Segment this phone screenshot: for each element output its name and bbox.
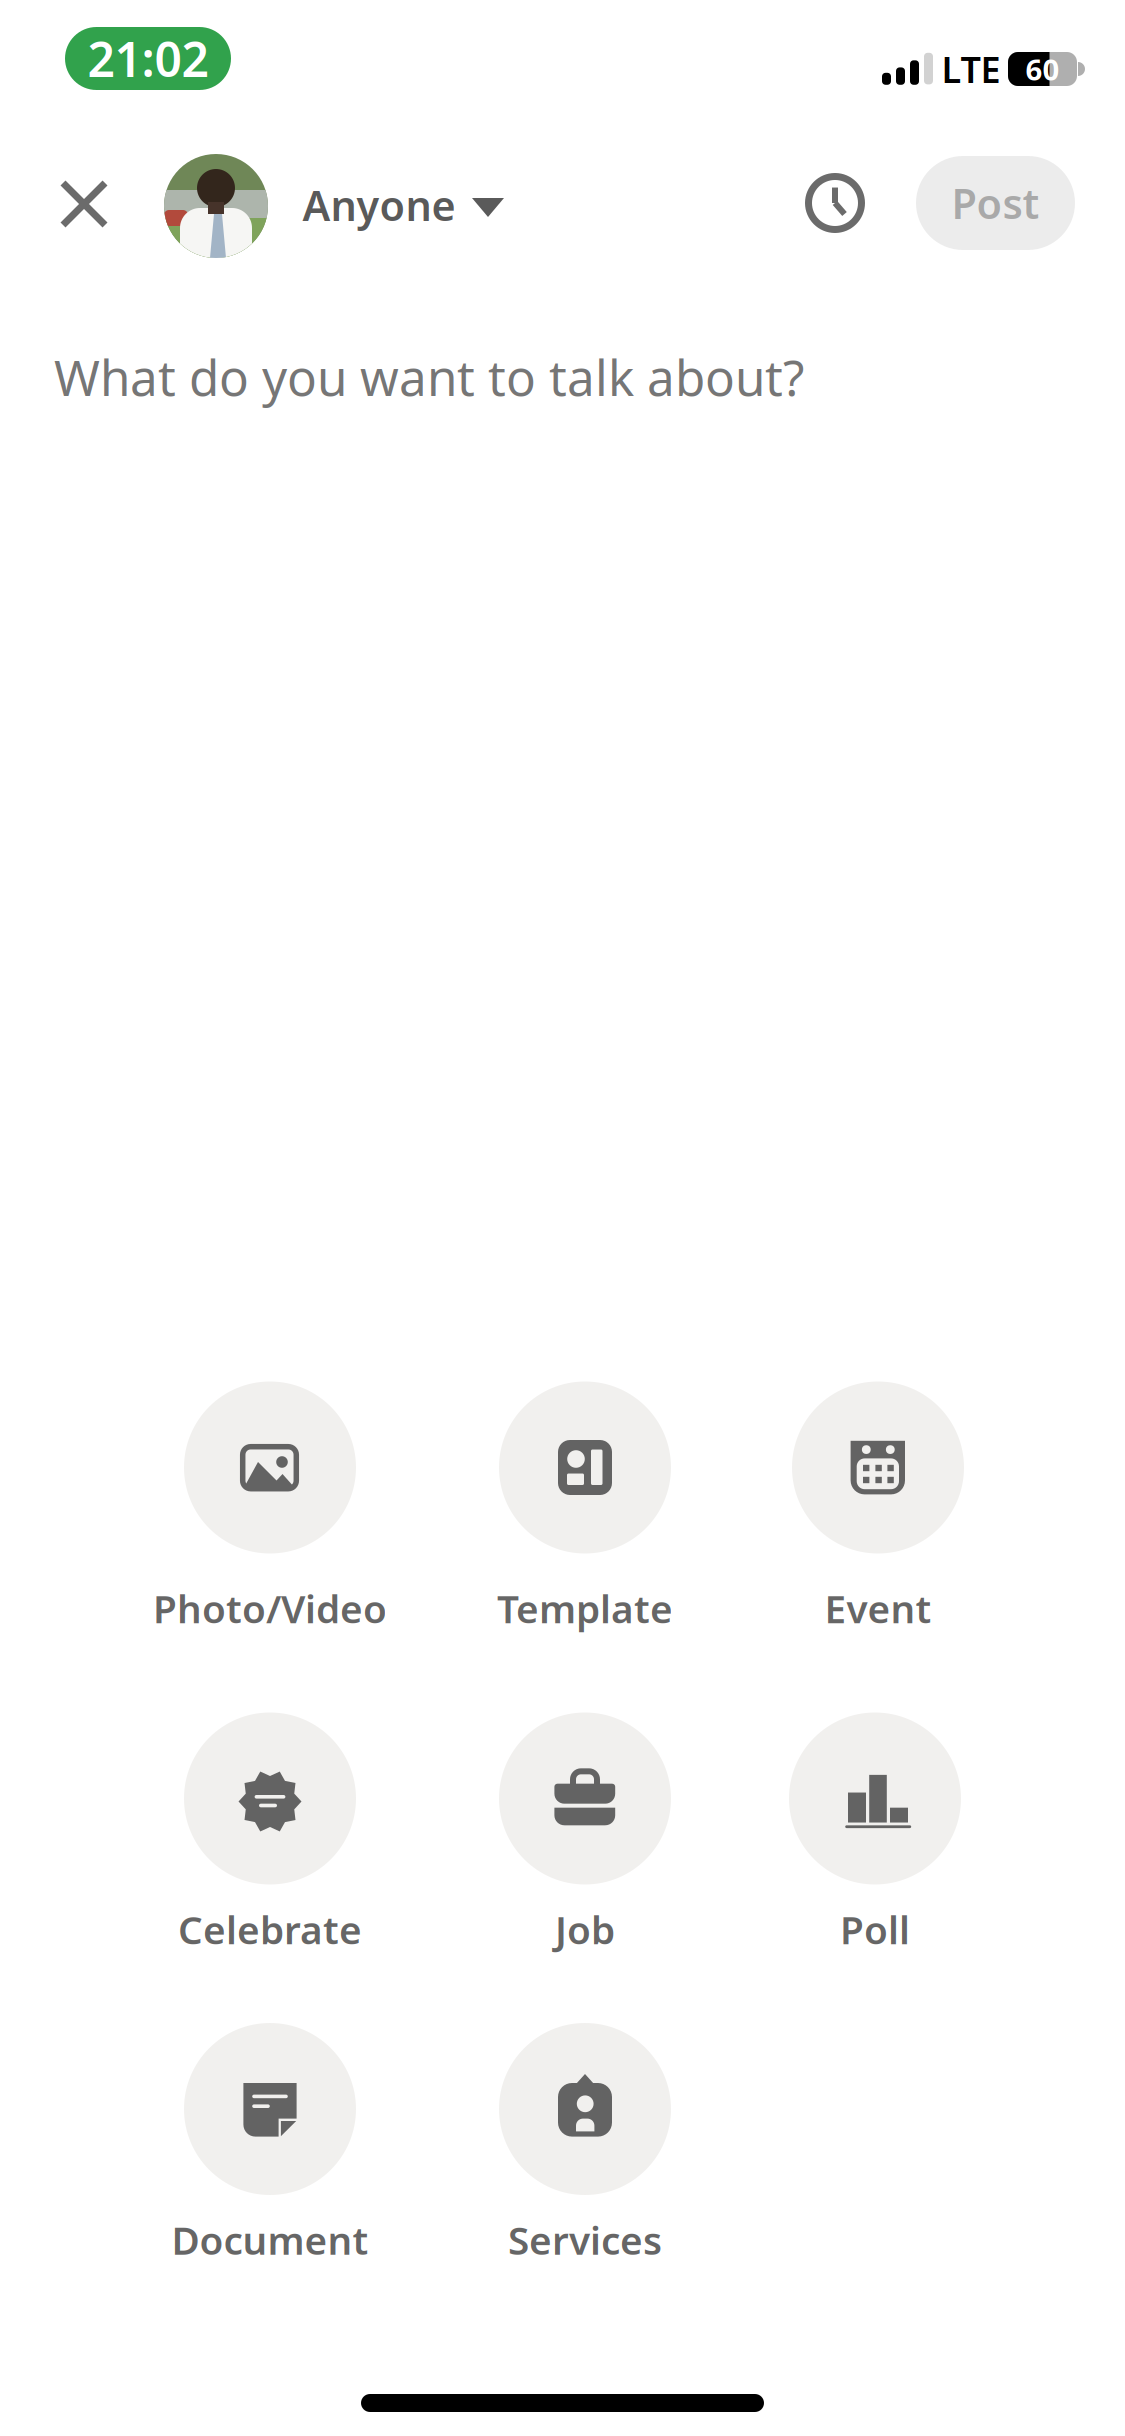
staticText: Poll [840,1903,910,1955]
staticText: Anyone [302,178,455,232]
staticText: Celebrate [178,1903,362,1955]
staticText: What do you want to talk about? [54,344,804,409]
button[interactable]: Poll [705,1712,1045,1955]
button[interactable]: Post visibility: Anyone [164,151,504,261]
button[interactable]: Post [916,156,1075,250]
staticText: Job [555,1903,615,1955]
button[interactable]: Job [415,1712,755,1955]
staticText: Event [824,1582,931,1634]
staticText: Post [951,176,1039,230]
button[interactable]: Event [708,1381,1048,1634]
staticText: 21:02 [87,27,208,90]
button[interactable]: Document [100,2023,440,2265]
button[interactable]: Close [60,180,108,228]
button[interactable]: Photo/Video [100,1381,440,1634]
button[interactable]: Template [415,1381,755,1634]
button[interactable]: Celebrate [100,1712,440,1955]
staticText: LTE [941,45,1000,93]
staticText: Document [171,2214,368,2265]
staticText: Template [497,1582,673,1634]
button[interactable]: Services [415,2023,755,2265]
staticText: Services [508,2214,662,2265]
staticText: 60 [1025,49,1059,88]
staticText: Photo/Video [153,1582,387,1634]
button[interactable]: Schedule post [808,176,861,229]
